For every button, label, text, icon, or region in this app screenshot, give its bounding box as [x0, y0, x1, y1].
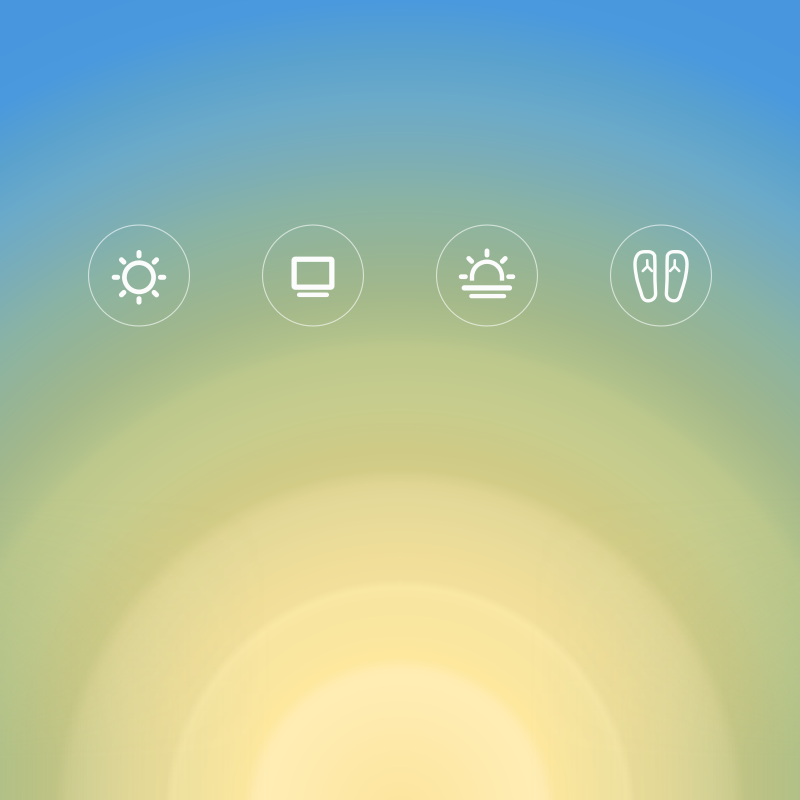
button[interactable]: Display: [262, 225, 363, 326]
button[interactable]: Daylight: [88, 225, 189, 326]
button[interactable]: Sunset: [436, 225, 537, 326]
button[interactable]: Vacation: [610, 225, 711, 326]
